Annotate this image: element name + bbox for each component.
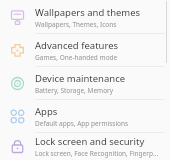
staticText: Games, One-handed mode xyxy=(35,53,118,62)
button[interactable]: Wallpapers and themes xyxy=(0,1,170,33)
button[interactable]: Device maintenance xyxy=(0,67,170,99)
button[interactable]: Lock screen and security xyxy=(0,133,170,160)
staticText: Wallpapers and themes xyxy=(35,6,141,19)
staticText: Battery, Storage, Memory xyxy=(35,86,114,95)
other: Lock screen and security xyxy=(9,138,26,155)
staticText: Device maintenance xyxy=(35,72,126,85)
staticText: Lock screen and security xyxy=(35,135,145,148)
other: Advanced features xyxy=(9,42,26,59)
other: Device maintenance xyxy=(9,75,26,92)
staticText: Advanced features xyxy=(35,39,119,52)
staticText: Wallpapers, Themes, Icons xyxy=(35,20,117,29)
staticText: Apps xyxy=(35,105,58,118)
other: Wallpapers and themes xyxy=(9,9,26,26)
other: Apps xyxy=(9,108,26,125)
staticText: Lock screen, Face Recognition, Fingerpri… xyxy=(35,149,160,158)
button[interactable]: Apps xyxy=(0,100,170,132)
staticText: Default apps, App permissions xyxy=(35,119,129,128)
button[interactable]: Advanced features xyxy=(0,34,170,66)
